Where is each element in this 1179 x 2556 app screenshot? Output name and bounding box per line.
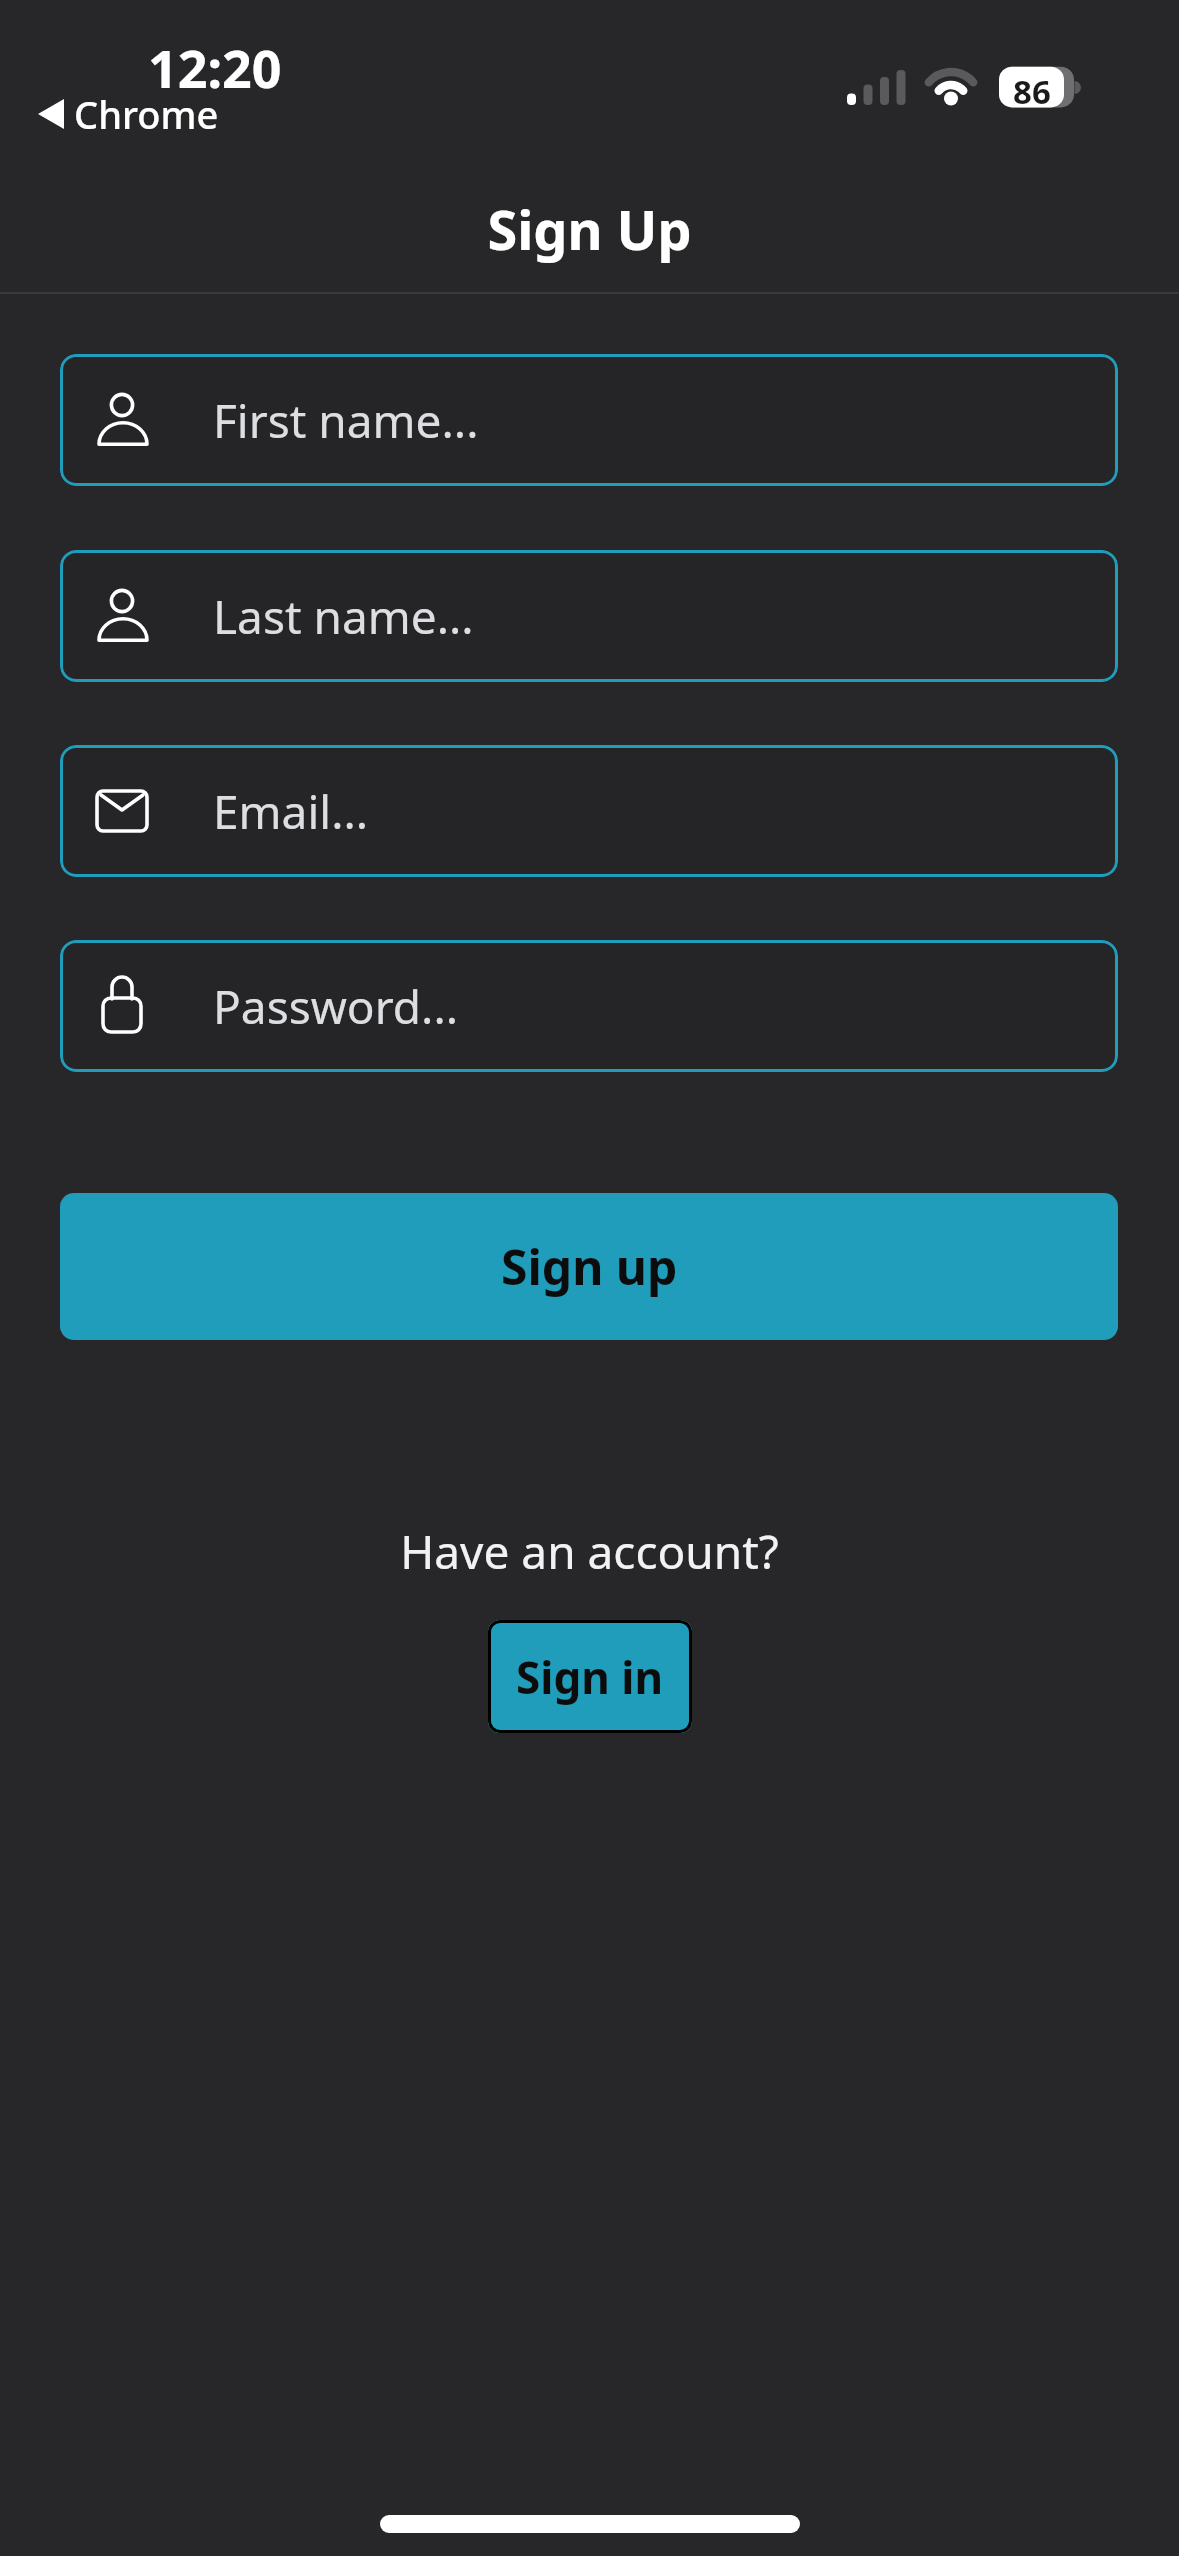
button[interactable]: First name...	[60, 354, 1118, 486]
staticText: Have an account?	[0, 1520, 1179, 1583]
button[interactable]: Email...	[60, 745, 1118, 877]
button[interactable]: Sign up	[60, 1193, 1118, 1340]
button[interactable]: Password...	[60, 940, 1118, 1072]
button[interactable]: Last name...	[60, 550, 1118, 682]
staticText: First name...	[213, 389, 479, 452]
staticText: Last name...	[213, 585, 474, 648]
staticText: Sign in	[516, 1647, 664, 1707]
staticText: Email...	[213, 780, 369, 843]
staticText: 12:20	[148, 32, 282, 103]
staticText: 86	[1003, 69, 1061, 114]
staticText: Sign up	[501, 1234, 678, 1299]
staticText: Sign Up	[0, 192, 1179, 266]
button[interactable]: Sign in	[488, 1620, 692, 1733]
staticText: Password...	[213, 975, 459, 1038]
staticText: Chrome	[74, 88, 219, 140]
